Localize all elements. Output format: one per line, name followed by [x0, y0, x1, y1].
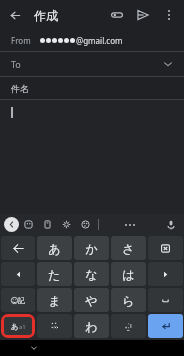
button[interactable]: Clipboard — [38, 215, 57, 234]
button[interactable]: Voice input — [161, 215, 181, 235]
button[interactable]: Space — [148, 288, 183, 312]
button[interactable]: Hide keyboard — [28, 342, 40, 354]
button[interactable]: や — [74, 288, 109, 312]
button[interactable]: さ — [111, 236, 146, 260]
staticText: 記 — [18, 296, 25, 305]
button[interactable]: More keyboard options — [120, 215, 140, 235]
button[interactable]: Symbols — [37, 314, 72, 338]
button[interactable]: Attach file — [104, 2, 130, 28]
staticText: From — [11, 35, 31, 46]
button[interactable]: Enter — [148, 314, 183, 338]
button[interactable]: 記 — [1, 288, 35, 312]
button[interactable]: Stickers — [19, 215, 38, 234]
button[interactable]: は — [111, 262, 146, 286]
button[interactable]: あ — [37, 236, 72, 260]
staticText: は — [122, 267, 135, 282]
staticText: ら — [122, 293, 135, 308]
staticText: か — [85, 241, 98, 256]
staticText: さ — [122, 241, 135, 256]
staticText: た — [48, 267, 61, 282]
button[interactable]: ま — [37, 288, 72, 312]
button[interactable]: Themes — [76, 215, 95, 234]
staticText: あ — [48, 241, 61, 256]
staticText: や — [85, 293, 98, 308]
button[interactable]: な — [74, 262, 109, 286]
button[interactable]: Undo — [1, 236, 35, 260]
button[interactable]: Settings — [57, 215, 76, 234]
button[interactable]: Send — [130, 2, 156, 28]
button[interactable]: Close toolbar — [4, 217, 19, 232]
staticText: To — [11, 58, 21, 70]
button[interactable]: か — [74, 236, 109, 260]
button[interactable]: わ — [74, 314, 109, 338]
button[interactable]: Move cursor left — [1, 262, 35, 286]
button[interactable]: To — [0, 52, 184, 76]
staticText: @gmail.com — [76, 35, 123, 46]
button[interactable]: From — [0, 30, 184, 51]
button[interactable] — [0, 100, 184, 214]
button[interactable]: 件名 — [0, 77, 184, 99]
staticText: あ — [11, 322, 19, 331]
staticText: ま — [48, 293, 61, 308]
button[interactable]: More options — [156, 2, 182, 28]
button[interactable]: Delete — [148, 236, 183, 260]
button[interactable]: Punctuation — [111, 314, 146, 338]
button[interactable]: ら — [111, 288, 146, 312]
button[interactable]: Move cursor right — [148, 262, 183, 286]
button[interactable]: Switch input mode — [4, 317, 32, 335]
staticText: わ — [85, 319, 98, 334]
staticText: 件名 — [11, 83, 29, 94]
button[interactable]: Back — [0, 0, 30, 30]
button[interactable]: た — [37, 262, 72, 286]
staticText: な — [85, 267, 98, 282]
staticText: a1 — [19, 323, 26, 331]
staticText: 作成 — [34, 8, 58, 23]
